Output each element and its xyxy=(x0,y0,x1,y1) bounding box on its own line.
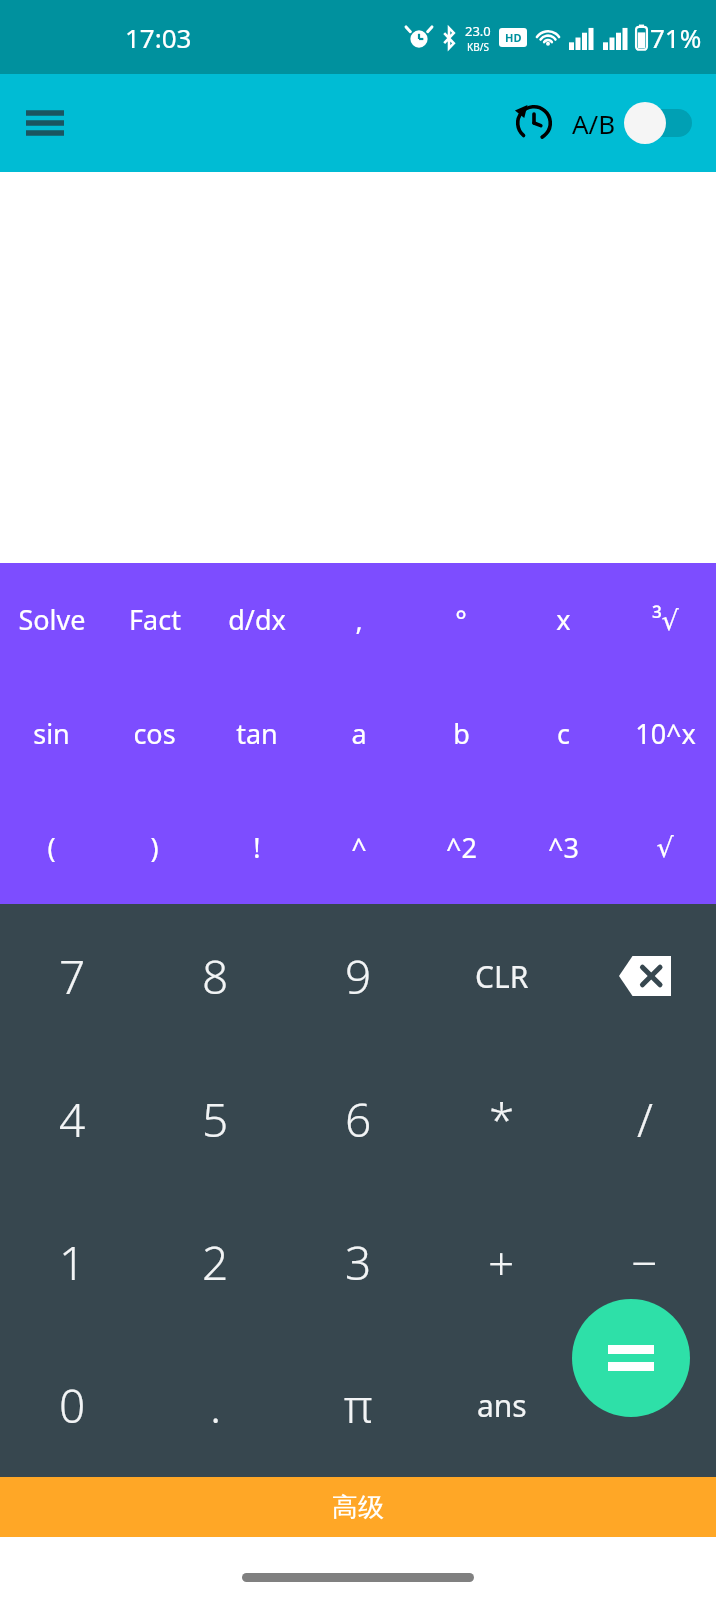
button[interactable]: Equals xyxy=(572,1299,690,1417)
button[interactable]: + xyxy=(430,1191,573,1334)
button[interactable]: 6 xyxy=(287,1048,430,1191)
button[interactable]: 8 xyxy=(144,904,287,1048)
staticText: tan xyxy=(236,715,278,752)
staticText: 6 xyxy=(345,1088,372,1151)
staticText: π xyxy=(344,1374,373,1437)
button[interactable]: CLR xyxy=(430,904,573,1048)
button[interactable]: ³√ xyxy=(614,563,716,676)
button[interactable]: √ xyxy=(614,790,716,904)
staticText: 9 xyxy=(345,945,372,1008)
staticText: 8 xyxy=(202,945,229,1008)
staticText: 3 xyxy=(345,1231,372,1294)
staticText: ^ xyxy=(351,829,367,866)
staticText: ! xyxy=(253,829,261,866)
button[interactable]: ^2 xyxy=(410,790,512,904)
staticText: Fact xyxy=(129,601,181,638)
staticText: 71% xyxy=(650,20,702,55)
button[interactable]: − xyxy=(573,1191,716,1334)
button[interactable]: b xyxy=(410,676,512,790)
staticText: 高级 xyxy=(332,1491,384,1524)
button[interactable]: ^ xyxy=(308,790,410,904)
button[interactable]: sin xyxy=(0,676,103,790)
staticText: A/B xyxy=(572,106,616,141)
staticText: ³√ xyxy=(652,601,679,638)
button[interactable]: Backspace xyxy=(573,904,716,1048)
staticText: KB/S xyxy=(467,40,489,54)
staticText: Solve xyxy=(18,601,86,638)
button[interactable]: cos xyxy=(103,676,206,790)
staticText: ^3 xyxy=(548,829,579,866)
button[interactable]: π xyxy=(287,1334,430,1477)
staticText: ) xyxy=(150,829,159,866)
staticText: sin xyxy=(33,715,70,752)
staticText: 7 xyxy=(59,945,86,1008)
staticText: 5 xyxy=(202,1088,229,1151)
button[interactable]: tan xyxy=(206,676,308,790)
button[interactable]: 3 xyxy=(287,1191,430,1334)
staticText: 10^x xyxy=(635,715,696,752)
staticText: √ xyxy=(656,832,674,863)
button[interactable]: A/B toggle xyxy=(624,101,696,145)
staticText: , xyxy=(355,601,363,638)
staticText: ^2 xyxy=(446,829,477,866)
staticText: ( xyxy=(47,829,56,866)
staticText: * xyxy=(489,1088,515,1151)
button[interactable]: . xyxy=(144,1334,287,1477)
button[interactable]: ( xyxy=(0,790,103,904)
button[interactable]: * xyxy=(430,1048,573,1191)
button[interactable]: 1 xyxy=(0,1191,144,1334)
staticText: + xyxy=(488,1231,515,1294)
button[interactable]: Fact xyxy=(103,563,206,676)
staticText: HD xyxy=(505,30,522,45)
staticText: c xyxy=(557,715,570,752)
staticText: 1 xyxy=(59,1231,86,1294)
staticText: 0 xyxy=(59,1374,86,1437)
staticText: CLR xyxy=(475,956,529,997)
staticText: / xyxy=(637,1088,653,1151)
button[interactable]: ) xyxy=(103,790,206,904)
button[interactable]: Menu xyxy=(18,96,72,150)
button[interactable]: 10^x xyxy=(614,676,716,790)
button[interactable]: 0 xyxy=(0,1334,144,1477)
staticText: − xyxy=(631,1231,658,1294)
staticText: b xyxy=(453,715,470,752)
button[interactable]: d/dx xyxy=(206,563,308,676)
staticText: 4 xyxy=(59,1088,86,1151)
staticText: d/dx xyxy=(228,601,286,638)
button[interactable]: , xyxy=(308,563,410,676)
button[interactable]: a xyxy=(308,676,410,790)
staticText: a xyxy=(351,715,367,752)
button[interactable]: 高级 xyxy=(0,1477,716,1537)
button[interactable]: c xyxy=(512,676,614,790)
staticText: 23.0 xyxy=(465,22,491,40)
staticText: 2 xyxy=(202,1231,229,1294)
staticText: x xyxy=(556,601,571,638)
button[interactable]: / xyxy=(573,1048,716,1191)
staticText: ° xyxy=(455,601,467,638)
button[interactable]: 7 xyxy=(0,904,144,1048)
button[interactable]: ans xyxy=(430,1334,573,1477)
staticText: cos xyxy=(133,715,176,752)
button[interactable]: History xyxy=(508,97,560,149)
button[interactable]: 2 xyxy=(144,1191,287,1334)
staticText: 17:03 xyxy=(125,20,192,55)
staticText: ans xyxy=(477,1385,527,1426)
button[interactable]: 4 xyxy=(0,1048,144,1191)
button[interactable]: 5 xyxy=(144,1048,287,1191)
button[interactable]: ! xyxy=(206,790,308,904)
staticText: . xyxy=(210,1374,222,1437)
button[interactable]: x xyxy=(512,563,614,676)
button[interactable]: 9 xyxy=(287,904,430,1048)
button[interactable]: ^3 xyxy=(512,790,614,904)
button[interactable]: ° xyxy=(410,563,512,676)
button[interactable]: Solve xyxy=(0,563,103,676)
button[interactable]: Equals xyxy=(573,1334,716,1477)
